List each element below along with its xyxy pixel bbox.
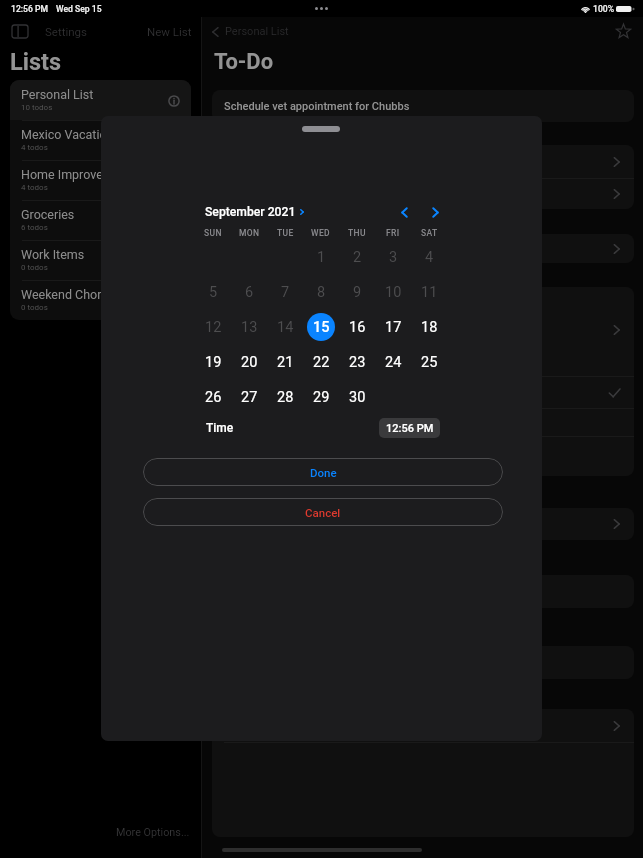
button[interactable] <box>212 234 634 263</box>
staticText: New List <box>147 25 192 38</box>
button[interactable]: Weekend Chores <box>10 280 191 320</box>
button[interactable] <box>212 646 634 679</box>
button[interactable]: List info <box>167 94 180 107</box>
staticText: 28 <box>277 389 294 406</box>
button[interactable]: 20 <box>235 348 263 376</box>
button[interactable]: 27 <box>235 383 263 411</box>
staticText: THU <box>348 228 366 238</box>
staticText: Mexico Vacation <box>21 127 114 142</box>
staticText: Schedule vet appointment for Chubbs <box>224 100 410 113</box>
button[interactable]: 17 <box>379 313 407 341</box>
button[interactable]: New List <box>147 25 192 38</box>
staticText: 8 <box>317 284 326 301</box>
staticText: 12:56 PM <box>11 4 48 14</box>
button[interactable] <box>212 287 634 476</box>
button[interactable]: 2 <box>343 243 371 271</box>
staticText: Cancel <box>305 506 341 519</box>
button[interactable]: Toggle sidebar <box>11 23 29 39</box>
staticText: Done <box>310 466 337 479</box>
staticText: September 2021 <box>205 205 296 219</box>
staticText: 17 <box>385 319 402 336</box>
button[interactable]: 23 <box>343 348 371 376</box>
staticText: Time <box>206 421 234 435</box>
staticText: 15 <box>313 319 330 336</box>
staticText: 24 <box>385 354 402 371</box>
button[interactable]: Work Items <box>10 240 191 280</box>
staticText: 13 <box>241 319 258 336</box>
staticText: Personal List <box>21 87 94 102</box>
button[interactable]: More Options... <box>116 826 190 839</box>
staticText: More Options... <box>116 826 190 839</box>
staticText: Groceries <box>21 207 75 222</box>
staticText: WED <box>311 228 331 238</box>
button[interactable]: Home Improvement <box>10 160 191 200</box>
staticText: 9 <box>353 284 362 301</box>
button[interactable]: 28 <box>271 383 299 411</box>
button[interactable]: 5 <box>199 278 227 306</box>
staticText: Wed Sep 15 <box>56 4 102 14</box>
staticText: 16 <box>349 319 366 336</box>
button[interactable]: 22 <box>307 348 335 376</box>
button[interactable]: Groceries <box>10 200 191 240</box>
button[interactable]: 21 <box>271 348 299 376</box>
button[interactable]: Cancel <box>143 498 503 526</box>
staticText: 4 <box>425 249 434 266</box>
button[interactable]: September 2021 <box>205 205 306 219</box>
button[interactable]: 12:56 PM <box>379 418 440 438</box>
button[interactable] <box>212 575 634 608</box>
button[interactable]: 14 <box>271 313 299 341</box>
staticText: 100% <box>593 4 614 14</box>
staticText: 18 <box>421 319 438 336</box>
button[interactable]: 10 <box>379 278 407 306</box>
staticText: TUE <box>277 228 294 238</box>
staticText: 10 todos <box>21 103 53 112</box>
button[interactable]: 30 <box>343 383 371 411</box>
staticText: Lists <box>10 48 62 76</box>
button[interactable]: 4 <box>415 243 443 271</box>
button[interactable]: Next month <box>424 202 446 222</box>
staticText: 11 <box>421 284 438 301</box>
button[interactable]: 15 <box>307 313 335 341</box>
button[interactable]: 7 <box>271 278 299 306</box>
button[interactable]: Previous month <box>393 202 415 222</box>
button[interactable]: 26 <box>199 383 227 411</box>
button[interactable]: 12 <box>199 313 227 341</box>
button[interactable]: 1 <box>307 243 335 271</box>
staticText: 7 <box>281 284 290 301</box>
staticText: 4 todos <box>21 183 48 192</box>
button[interactable]: Done <box>143 458 503 486</box>
button[interactable]: 19 <box>199 348 227 376</box>
button[interactable]: 29 <box>307 383 335 411</box>
button[interactable]: Personal List <box>10 80 191 120</box>
button[interactable]: 16 <box>343 313 371 341</box>
button[interactable]: Favorite <box>613 21 633 41</box>
staticText: To-Do <box>214 49 274 75</box>
button[interactable]: 25 <box>415 348 443 376</box>
button[interactable] <box>212 145 634 209</box>
staticText: 10 <box>385 284 402 301</box>
button[interactable]: Personal List <box>211 25 289 38</box>
button[interactable]: 8 <box>307 278 335 306</box>
staticText: 19 <box>205 354 222 371</box>
staticText: 14 <box>277 319 294 336</box>
button[interactable] <box>212 709 634 837</box>
staticText: 21 <box>277 354 294 371</box>
staticText: 22 <box>313 354 330 371</box>
button[interactable]: 3 <box>379 243 407 271</box>
staticText: 3 <box>389 249 398 266</box>
button[interactable]: 9 <box>343 278 371 306</box>
staticText: Settings <box>45 25 87 38</box>
staticText: Personal List <box>225 25 289 38</box>
button[interactable]: Settings <box>45 25 87 38</box>
button[interactable] <box>212 508 634 540</box>
button[interactable]: 24 <box>379 348 407 376</box>
button[interactable]: Mexico Vacation <box>10 120 191 160</box>
button[interactable]: 18 <box>415 313 443 341</box>
button[interactable]: 6 <box>235 278 263 306</box>
button[interactable] <box>212 90 634 122</box>
staticText: 25 <box>421 354 438 371</box>
staticText: 1 <box>317 249 326 266</box>
button[interactable]: 11 <box>415 278 443 306</box>
staticText: 4 todos <box>21 143 48 152</box>
button[interactable]: 13 <box>235 313 263 341</box>
